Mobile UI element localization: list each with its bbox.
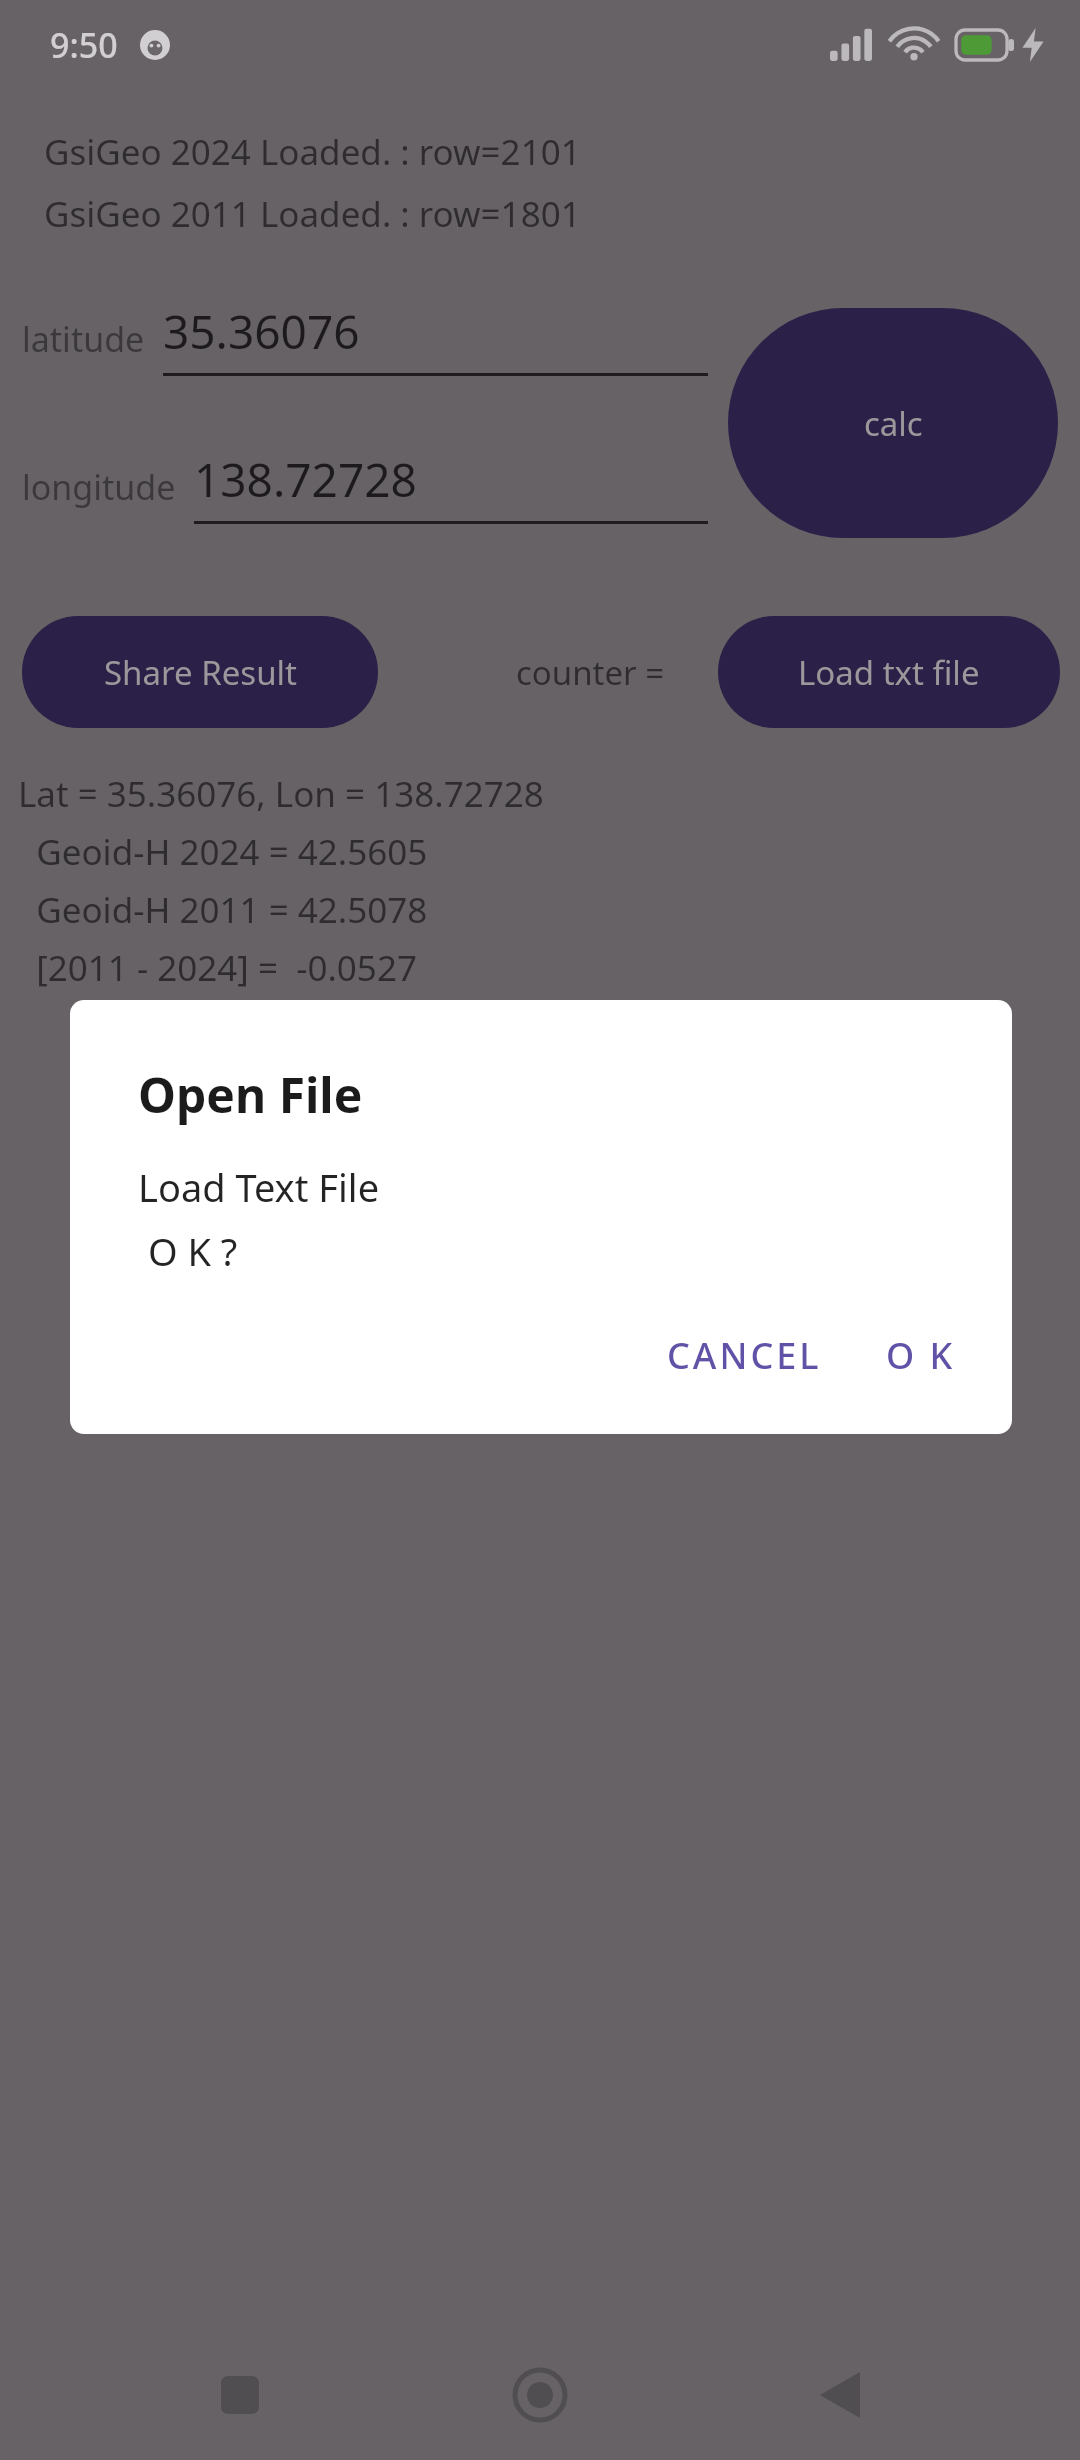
- staticText: longitude: [22, 464, 176, 510]
- button[interactable]: Recent apps: [180, 2335, 300, 2455]
- staticText: 138.72728: [194, 448, 417, 511]
- staticText: [2011 - 2024] = -0.0527: [18, 944, 417, 992]
- staticText: Geoid-H 2011 = 42.5078: [18, 886, 428, 934]
- staticText: 9:50: [50, 22, 118, 68]
- staticText: GsiGeo 2011 Loaded. : row=1801: [44, 190, 581, 238]
- staticText: Geoid-H 2024 = 42.5605: [18, 828, 428, 876]
- staticText: Load Text File: [138, 1161, 380, 1213]
- staticText: latitude: [22, 316, 145, 362]
- staticText: GsiGeo 2024 Loaded. : row=2101: [44, 128, 581, 176]
- button[interactable]: calc: [728, 308, 1058, 538]
- staticText: Lat = 35.36076, Lon = 138.72728: [18, 770, 544, 818]
- button[interactable]: Home: [480, 2335, 600, 2455]
- button[interactable]: O K: [864, 1319, 978, 1392]
- button[interactable]: Back: [780, 2335, 900, 2455]
- staticText: 35.36076: [163, 300, 360, 363]
- button[interactable]: Share Result: [22, 616, 378, 728]
- button[interactable]: CANCEL: [645, 1319, 844, 1392]
- staticText: O K ?: [138, 1225, 238, 1277]
- staticText: CANCEL: [667, 1331, 822, 1380]
- staticText: O K: [886, 1331, 956, 1380]
- staticText: calc: [864, 401, 923, 446]
- staticText: Open File: [138, 1062, 363, 1127]
- button[interactable]: Load txt file: [718, 616, 1060, 728]
- staticText: counter =: [516, 650, 665, 695]
- staticText: Share Result: [104, 650, 297, 695]
- staticText: Load txt file: [798, 650, 980, 695]
